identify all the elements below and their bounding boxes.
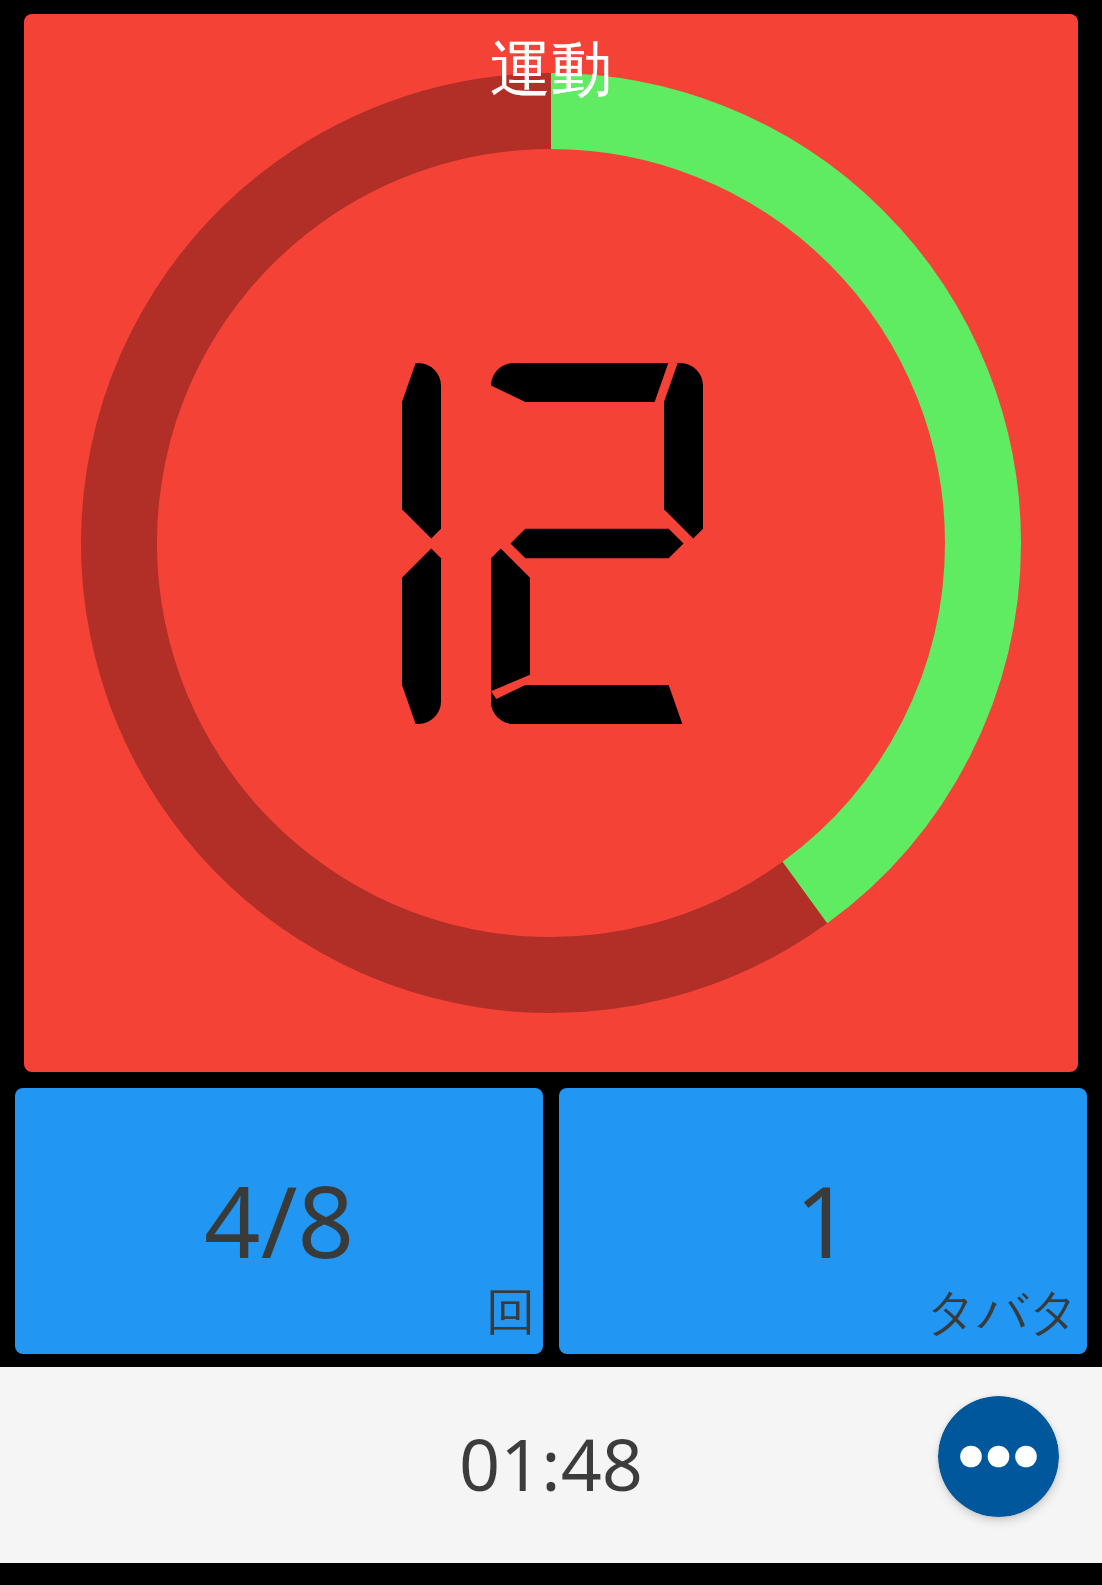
button[interactable]: 運動 [24,14,1078,1072]
button[interactable]: 4/8 [15,1088,543,1354]
staticText: 01:48 [459,1414,644,1512]
button[interactable]: 1 [559,1088,1087,1354]
staticText: 運動 [490,31,612,108]
staticText: 1 [795,1152,852,1287]
staticText: 4/8 [204,1152,355,1287]
staticText: 回 [486,1281,536,1344]
staticText: タバタ [926,1281,1080,1344]
button[interactable]: More options [938,1396,1059,1517]
